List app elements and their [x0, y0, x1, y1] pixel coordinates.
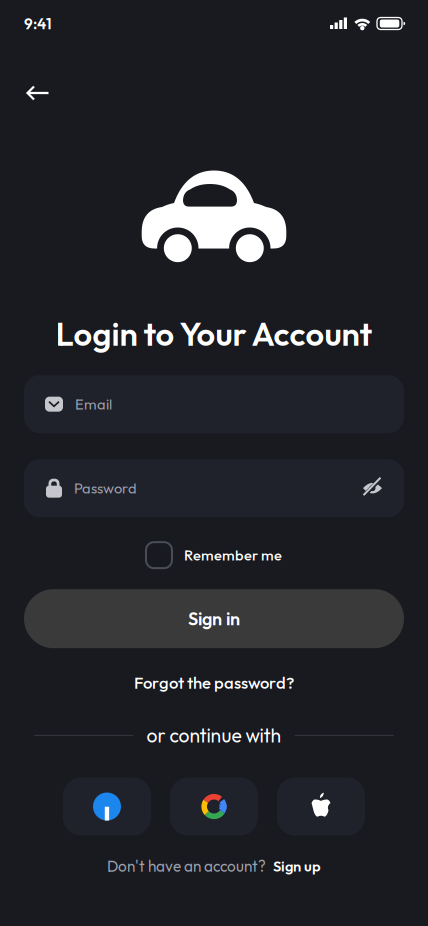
button[interactable]: Back — [12, 71, 64, 115]
staticText: Email — [75, 395, 112, 413]
button[interactable]: Continue with Facebook — [63, 777, 151, 835]
staticText: Sign up — [273, 857, 321, 875]
button[interactable]: Forgot the password? — [134, 672, 294, 693]
button[interactable]: Show password — [359, 475, 386, 501]
staticText: Remember me — [184, 546, 282, 564]
staticText: Don't have an account? — [107, 856, 266, 876]
button[interactable]: Remember me — [146, 542, 282, 568]
button[interactable]: Sign in — [0, 589, 428, 648]
button[interactable]: Sign up — [273, 857, 321, 875]
staticText: Forgot the password? — [134, 672, 294, 693]
staticText: 9:41 — [24, 14, 52, 33]
staticText: Sign in — [188, 607, 240, 630]
staticText: Password — [74, 479, 137, 497]
staticText: Login to Your Account — [55, 313, 372, 354]
staticText: or continue with — [146, 723, 281, 748]
button[interactable]: Continue with Apple — [277, 777, 365, 835]
button[interactable]: Continue with Google — [170, 777, 258, 835]
